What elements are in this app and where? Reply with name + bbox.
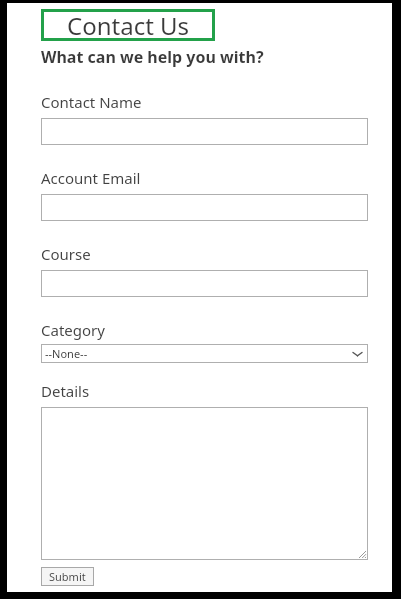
button[interactable] xyxy=(41,270,368,297)
staticText: Account Email xyxy=(41,168,141,188)
staticText: Contact Us xyxy=(67,9,190,41)
staticText: --None-- xyxy=(45,346,88,361)
button[interactable] xyxy=(41,407,368,560)
button[interactable]: Contact Us xyxy=(41,9,215,41)
staticText: Category xyxy=(41,320,105,340)
staticText: Details xyxy=(41,381,90,401)
staticText: Contact Name xyxy=(41,92,142,112)
button[interactable] xyxy=(41,194,368,221)
button[interactable] xyxy=(41,118,368,145)
staticText: Submit xyxy=(49,569,86,584)
staticText: Course xyxy=(41,244,91,264)
staticText: What can we help you with? xyxy=(41,46,264,68)
button[interactable]: Category dropdown xyxy=(41,344,368,363)
button[interactable]: Submit xyxy=(41,567,94,586)
